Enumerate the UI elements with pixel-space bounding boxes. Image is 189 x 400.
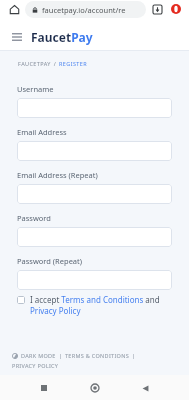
- button[interactable]: Password (Repeat): [17, 270, 172, 290]
- staticText: Password: [17, 213, 51, 223]
- button[interactable]: DARK MODE: [21, 352, 56, 359]
- button[interactable]: Menu: [9, 29, 25, 45]
- other: Accept terms checkbox: [17, 296, 25, 304]
- staticText: Username: [17, 84, 54, 94]
- staticText: faucetpay.io/account/re: [42, 5, 126, 15]
- button[interactable]: Home: [85, 378, 105, 398]
- button[interactable]: Install app: [149, 1, 165, 17]
- button[interactable]: Email Address (Repeat): [17, 184, 172, 204]
- staticText: |: [129, 352, 135, 359]
- staticText: Email Address (Repeat): [17, 170, 98, 180]
- staticText: Email Address: [17, 127, 67, 137]
- button[interactable]: faucetpay.io/account/re: [25, 1, 146, 18]
- button[interactable]: Email Address: [17, 141, 172, 161]
- button[interactable]: FAUCETPAY: [18, 60, 51, 67]
- staticText: /: [51, 60, 59, 67]
- staticText: Password (Repeat): [17, 256, 83, 266]
- button[interactable]: Recent apps: [34, 378, 54, 398]
- staticText: |: [56, 352, 65, 359]
- button[interactable]: Accept terms checkbox: [17, 294, 172, 316]
- button[interactable]: Home: [5, 0, 23, 18]
- button[interactable]: Username: [17, 98, 172, 118]
- button[interactable]: Browser menu: [168, 1, 184, 17]
- button[interactable]: REGISTER: [59, 60, 88, 67]
- button[interactable]: PRIVACY POLICY: [12, 362, 59, 369]
- button[interactable]: FaucetPay: [31, 29, 93, 45]
- button[interactable]: Password: [17, 227, 172, 247]
- button[interactable]: Back: [135, 378, 155, 398]
- button[interactable]: TERMS & CONDITIONS: [65, 352, 129, 359]
- staticText: I accept Terms and Conditions and Privac…: [30, 294, 172, 316]
